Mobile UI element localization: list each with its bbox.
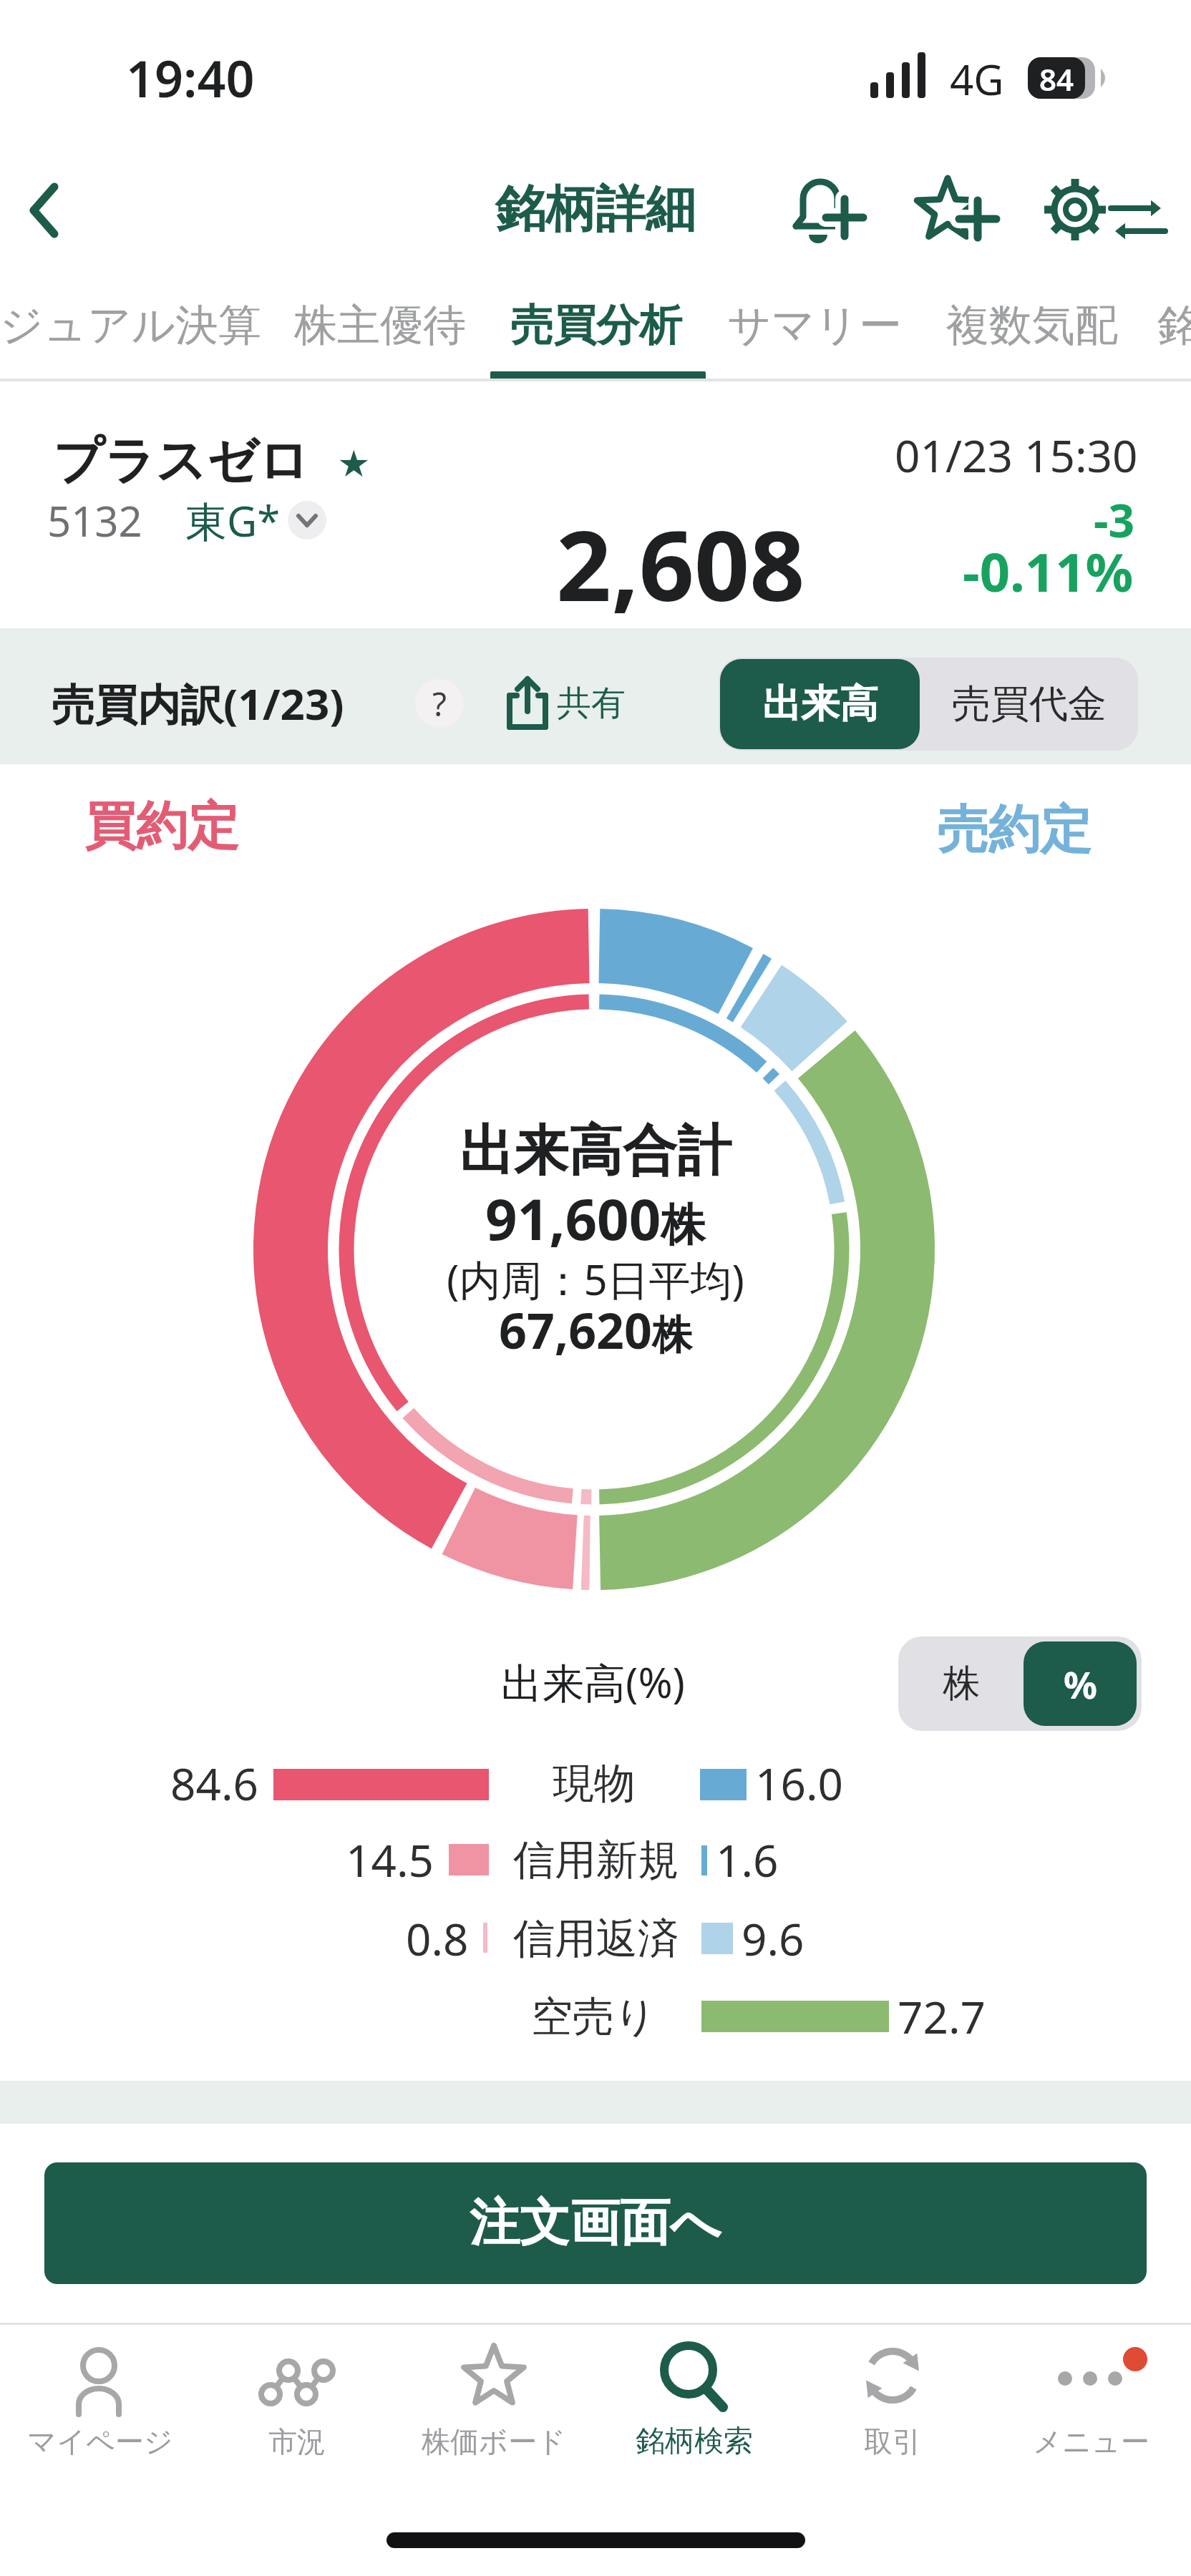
staticText: -3 bbox=[1094, 489, 1135, 551]
staticText: 19:40 bbox=[126, 44, 255, 112]
staticText: 共有 bbox=[557, 682, 626, 725]
staticText: 2,608 bbox=[556, 498, 805, 630]
button[interactable] bbox=[397, 2326, 595, 2533]
staticText: 72.7 bbox=[898, 1986, 986, 2046]
staticText: 現物 bbox=[553, 1757, 636, 1810]
staticText: -0.11% bbox=[963, 535, 1134, 608]
button[interactable] bbox=[991, 2326, 1190, 2533]
staticText: 株価ボード bbox=[422, 2424, 566, 2459]
staticText: 16.0 bbox=[755, 1753, 844, 1813]
button[interactable] bbox=[793, 2326, 991, 2533]
staticText: 取引 bbox=[864, 2424, 921, 2459]
staticText: 売買代金 bbox=[952, 680, 1107, 728]
button[interactable] bbox=[198, 2326, 397, 2533]
button[interactable] bbox=[0, 286, 251, 372]
staticText: ビジュアル決算 bbox=[0, 298, 262, 353]
staticText: 株主優待 bbox=[294, 298, 466, 353]
staticText: 売買内訳(1/23) bbox=[52, 674, 344, 733]
button[interactable] bbox=[283, 497, 333, 545]
staticText: 複数気配 bbox=[946, 298, 1118, 353]
staticText: 67,620株 bbox=[499, 1297, 692, 1363]
staticText: 信用返済 bbox=[513, 1913, 679, 1965]
staticText: 出来高 bbox=[762, 680, 878, 728]
staticText: 14.5 bbox=[346, 1830, 434, 1890]
button[interactable] bbox=[14, 165, 100, 258]
button[interactable] bbox=[595, 2326, 793, 2533]
staticText: マイページ bbox=[27, 2424, 173, 2459]
staticText: 01/23 15:30 bbox=[895, 425, 1138, 485]
button[interactable]: 出来高 bbox=[720, 659, 920, 749]
staticText: 信用新規 bbox=[513, 1834, 679, 1886]
staticText: 市況 bbox=[268, 2424, 326, 2459]
staticText: 4G bbox=[950, 51, 1004, 107]
staticText: プラスゼロ bbox=[53, 430, 310, 493]
staticText: 銘柄詳細 bbox=[495, 178, 696, 241]
button[interactable] bbox=[490, 286, 705, 372]
staticText: サマリー bbox=[727, 298, 903, 353]
button[interactable] bbox=[1031, 165, 1174, 258]
staticText: 売約定 bbox=[937, 798, 1092, 863]
button[interactable]: 株 bbox=[898, 1636, 1024, 1731]
button[interactable]: % bbox=[1024, 1641, 1137, 1726]
staticText: 空売り bbox=[531, 1991, 657, 2043]
button[interactable]: 注文画面へ bbox=[44, 2162, 1147, 2284]
staticText: (内周：5日平均) bbox=[447, 1251, 744, 1307]
staticText: 出来高合計 bbox=[460, 1117, 731, 1186]
staticText: 出来高(%) bbox=[501, 1654, 685, 1710]
staticText: 5132 bbox=[47, 492, 142, 549]
staticText: 東G* bbox=[185, 492, 281, 549]
button[interactable] bbox=[1145, 286, 1191, 372]
staticText: 買約定 bbox=[84, 794, 239, 859]
staticText: 84 bbox=[1039, 59, 1074, 99]
staticText: ? bbox=[432, 681, 447, 726]
staticText: 1.6 bbox=[716, 1830, 779, 1890]
staticText: 91,600株 bbox=[485, 1181, 706, 1257]
staticText: 9.6 bbox=[742, 1908, 804, 1968]
button[interactable] bbox=[501, 673, 630, 737]
staticText: ★ bbox=[337, 442, 371, 486]
staticText: 銘柄ニュース bbox=[1157, 298, 1191, 353]
button[interactable] bbox=[415, 678, 465, 728]
staticText: 売買分析 bbox=[510, 298, 682, 353]
staticText: % bbox=[1064, 1659, 1097, 1709]
button[interactable] bbox=[946, 286, 1118, 372]
staticText: 注文画面へ bbox=[470, 2192, 721, 2255]
staticText: 0.8 bbox=[406, 1908, 469, 1968]
staticText: 株 bbox=[943, 1660, 980, 1707]
button[interactable] bbox=[780, 165, 873, 258]
button[interactable]: 売買代金 bbox=[920, 659, 1138, 749]
button[interactable] bbox=[909, 165, 1002, 258]
button[interactable] bbox=[0, 2326, 198, 2533]
button[interactable] bbox=[294, 286, 466, 372]
staticText: 84.6 bbox=[170, 1753, 259, 1813]
button[interactable] bbox=[729, 286, 900, 372]
staticText: メニュー bbox=[1033, 2424, 1149, 2459]
staticText: 銘柄検索 bbox=[636, 2423, 753, 2460]
